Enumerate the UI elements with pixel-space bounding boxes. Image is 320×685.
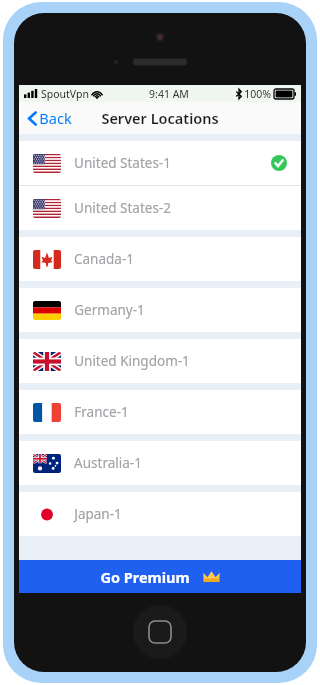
- staticText: Germany-1: [74, 301, 145, 319]
- button[interactable]: United States-2: [19, 186, 301, 230]
- button[interactable]: Japan-1: [19, 492, 301, 536]
- staticText: France-1: [74, 403, 129, 421]
- staticText: 9:41 AM: [149, 87, 189, 101]
- button[interactable]: Canada-1: [19, 237, 301, 281]
- button[interactable]: France-1: [19, 390, 301, 434]
- button[interactable]: Go Premium: [19, 560, 301, 593]
- staticText: United Kingdom-1: [74, 352, 190, 370]
- staticText: United States-1: [74, 154, 171, 172]
- staticText: United States-2: [74, 199, 171, 217]
- button[interactable]: United States-1: [19, 141, 301, 185]
- button[interactable]: Back: [25, 104, 75, 132]
- staticText: SpoutVpn: [41, 87, 89, 101]
- staticText: Canada-1: [74, 250, 134, 268]
- button[interactable]: Germany-1: [19, 288, 301, 332]
- staticText: Go Premium: [100, 567, 190, 587]
- staticText: Back: [39, 108, 72, 128]
- staticText: Japan-1: [74, 505, 122, 523]
- staticText: 100%: [244, 87, 271, 101]
- staticText: Server Locations: [101, 108, 219, 128]
- staticText: Australia-1: [74, 454, 142, 472]
- button[interactable]: Australia-1: [19, 441, 301, 485]
- button[interactable]: United Kingdom-1: [19, 339, 301, 383]
